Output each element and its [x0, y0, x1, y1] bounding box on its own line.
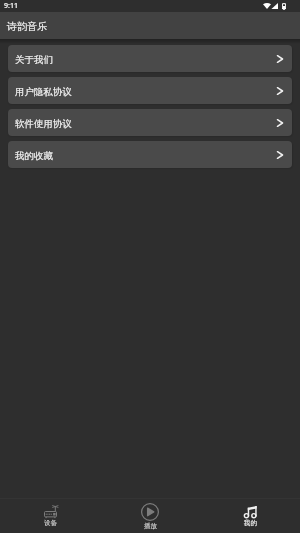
staticText: 9:11 — [4, 1, 18, 11]
staticText: 设备 — [44, 519, 57, 527]
button[interactable]: 我的 — [200, 499, 300, 533]
staticText: 软件使用协议 — [15, 118, 72, 130]
staticText: 我的收藏 — [15, 150, 53, 162]
staticText: 诗韵音乐 — [7, 20, 47, 33]
button[interactable]: 播放 — [100, 499, 200, 533]
staticText: 用户隐私协议 — [15, 86, 72, 98]
staticText: 我的 — [244, 519, 257, 527]
button[interactable]: 关于我们 — [8, 45, 292, 72]
button[interactable]: 我的收藏 — [8, 141, 292, 168]
button[interactable]: 用户隐私协议 — [8, 77, 292, 104]
staticText: 播放 — [144, 522, 157, 530]
staticText: 关于我们 — [15, 54, 53, 66]
button[interactable]: 软件使用协议 — [8, 109, 292, 136]
button[interactable]: 设备 — [0, 499, 100, 533]
